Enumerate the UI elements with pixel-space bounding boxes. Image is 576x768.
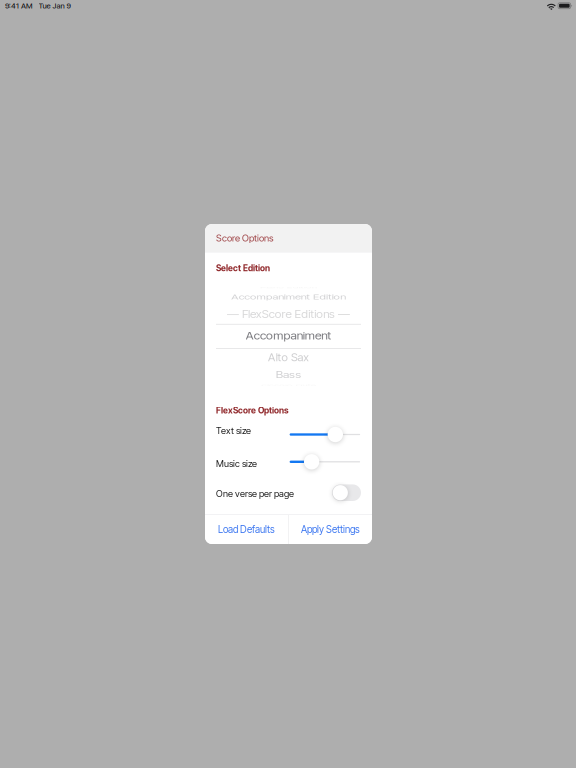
staticText: Score Options <box>216 232 274 244</box>
staticText: Accompaniment Edition <box>227 290 349 304</box>
staticText: — FlexScore Editions — <box>226 307 350 322</box>
staticText: Text size <box>216 425 251 436</box>
staticText: Load Defaults <box>218 524 275 535</box>
staticText: 9:41 AM <box>5 1 33 10</box>
button[interactable]: Text size <box>289 427 361 442</box>
staticText: FlexScore Options <box>216 405 289 416</box>
button[interactable]: Apply Settings <box>289 515 372 544</box>
staticText: One verse per page <box>216 488 294 499</box>
button[interactable]: Load Defaults <box>205 515 288 544</box>
staticText: Accompaniment <box>246 329 330 343</box>
staticText: Tue Jan 9 <box>38 1 70 10</box>
staticText: Music size <box>216 458 257 469</box>
staticText: Alto Sax <box>267 350 310 365</box>
button[interactable]: One verse per page <box>332 484 361 501</box>
button[interactable]: Music size <box>289 454 361 469</box>
staticText: Apply Settings <box>301 524 360 535</box>
staticText: Select Edition <box>216 263 270 273</box>
staticText: Bass <box>276 368 301 382</box>
